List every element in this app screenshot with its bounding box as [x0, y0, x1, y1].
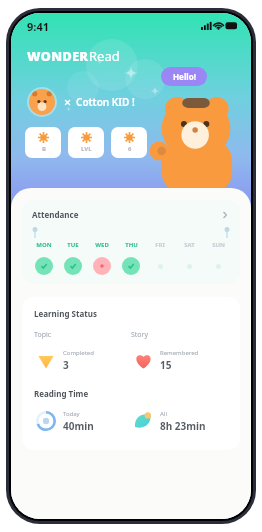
button[interactable]: Today: [34, 409, 131, 433]
button[interactable]: Learning Status: [22, 297, 240, 450]
staticText: MON: [36, 241, 52, 249]
staticText: 3: [63, 358, 69, 372]
button[interactable]: 6: [111, 127, 147, 158]
staticText: Topic: [34, 330, 52, 340]
staticText: 40min: [63, 419, 94, 433]
button[interactable]: Attendance: [22, 200, 240, 284]
staticText: TUE: [67, 241, 79, 249]
button[interactable]: Completed: [34, 348, 131, 372]
staticText: 15: [160, 358, 172, 372]
button[interactable]: B: [25, 127, 61, 158]
staticText: Remembered: [160, 349, 199, 357]
staticText: THU: [125, 241, 138, 249]
button[interactable]: Remembered: [131, 348, 228, 372]
staticText: Learning Status: [34, 308, 97, 319]
button[interactable]: LVL: [68, 127, 104, 158]
staticText: All: [160, 410, 167, 418]
staticText: Hello!: [173, 71, 196, 82]
staticText: Attendance: [32, 209, 79, 220]
button[interactable]: All: [131, 409, 228, 433]
staticText: 6: [128, 145, 132, 153]
staticText: WED: [95, 241, 109, 249]
staticText: Completed: [63, 349, 94, 357]
staticText: B: [42, 145, 46, 153]
staticText: Cotton KID !: [76, 95, 135, 109]
staticText: SUN: [212, 241, 225, 249]
button[interactable]: More: [220, 210, 230, 220]
staticText: WONDER: [27, 47, 89, 65]
button[interactable]: Cotton KID !: [27, 87, 251, 117]
staticText: SAT: [184, 241, 195, 249]
staticText: Read: [89, 47, 120, 65]
staticText: 9:41: [27, 19, 49, 34]
staticText: 8h 23min: [160, 419, 206, 433]
staticText: FRI: [155, 241, 165, 249]
staticText: LVL: [81, 145, 92, 153]
staticText: Story: [131, 330, 149, 340]
staticText: Today: [63, 410, 80, 418]
staticText: Reading Time: [34, 388, 89, 399]
